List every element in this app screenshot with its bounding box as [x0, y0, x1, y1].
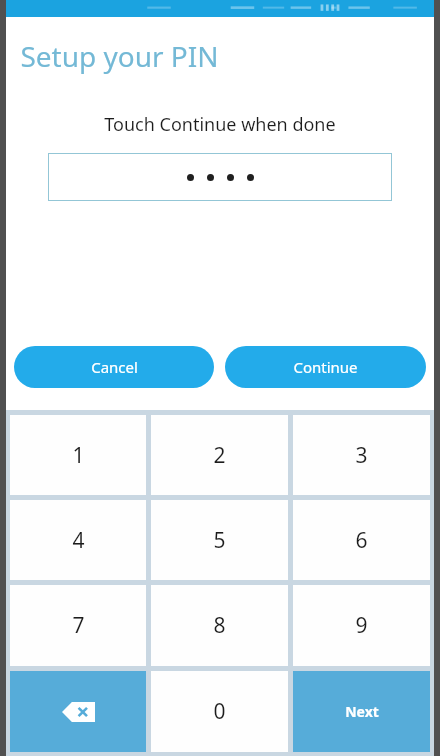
staticText: 7 [72, 611, 85, 640]
button[interactable]: 4 [10, 500, 146, 580]
staticText: 1 [72, 441, 85, 470]
staticText: Next [345, 702, 379, 721]
staticText: 6 [355, 526, 368, 555]
staticText: 9 [355, 611, 368, 640]
staticText: 8 [213, 611, 226, 640]
button[interactable]: 7 [10, 585, 146, 666]
button[interactable]: 5 [151, 500, 288, 580]
staticText: Cancel [91, 357, 138, 377]
button[interactable]: 9 [293, 585, 430, 666]
button[interactable]: 1 [10, 415, 146, 495]
button[interactable]: Cancel [14, 346, 214, 388]
button[interactable]: 0 [151, 671, 288, 752]
staticText: Touch Continue when done [104, 112, 336, 137]
button[interactable]: Backspace [10, 671, 146, 752]
button[interactable]: 2 [151, 415, 288, 495]
button[interactable]: 3 [293, 415, 430, 495]
button[interactable]: PIN entry field [48, 153, 392, 201]
staticText: Continue [293, 357, 358, 377]
button[interactable]: 8 [151, 585, 288, 666]
staticText: 5 [213, 526, 226, 555]
button[interactable]: 6 [293, 500, 430, 580]
staticText: 2 [213, 441, 226, 470]
staticText: 3 [355, 441, 368, 470]
button[interactable]: Next [293, 671, 430, 752]
staticText: 4 [72, 526, 85, 555]
staticText: Setup your PIN [20, 37, 219, 75]
staticText: 0 [213, 697, 226, 726]
button[interactable]: Continue [225, 346, 426, 388]
